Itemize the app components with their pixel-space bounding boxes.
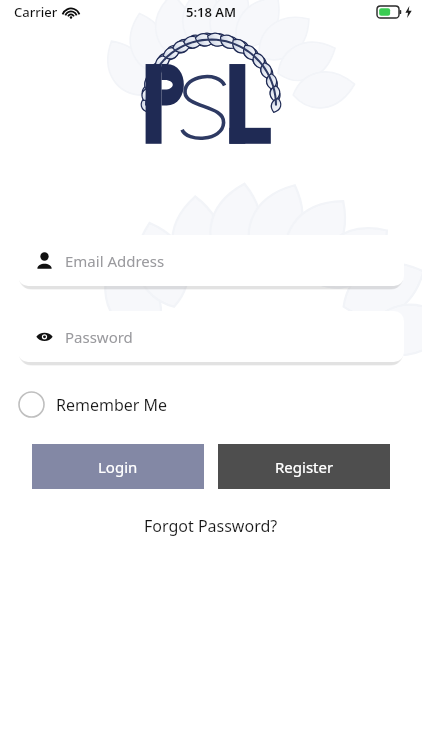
staticText: Password xyxy=(65,327,133,347)
button[interactable]: Forgot Password? xyxy=(132,511,290,541)
button[interactable]: Register xyxy=(218,444,390,489)
staticText: Forgot Password? xyxy=(144,515,278,537)
staticText: Remember Me xyxy=(56,394,168,416)
staticText: Email Address xyxy=(65,251,165,271)
button[interactable]: Email Address xyxy=(18,235,404,286)
staticText: Register xyxy=(275,457,334,477)
button[interactable]: Password xyxy=(18,311,404,362)
button[interactable]: Remember Me xyxy=(18,389,178,420)
staticText: Login xyxy=(98,457,138,477)
staticText: Carrier xyxy=(14,3,58,21)
button[interactable]: Login xyxy=(32,444,204,489)
staticText: 5:18 AM xyxy=(186,3,237,21)
